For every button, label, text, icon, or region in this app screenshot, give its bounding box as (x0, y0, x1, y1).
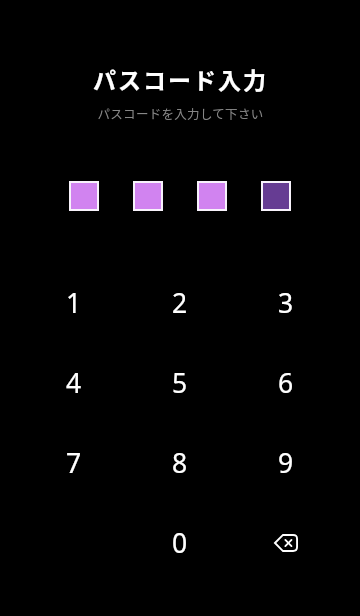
staticText: 5 (172, 365, 188, 401)
button[interactable]: Delete (233, 503, 339, 583)
staticText: 7 (66, 445, 82, 481)
button[interactable]: 2 (127, 263, 233, 343)
staticText: 8 (172, 445, 188, 481)
button[interactable]: 5 (127, 343, 233, 423)
staticText: パスコードを入力して下さい (97, 104, 264, 122)
staticText: 1 (66, 285, 82, 321)
button[interactable]: 6 (233, 343, 339, 423)
staticText: 3 (278, 285, 294, 321)
button[interactable]: 8 (127, 423, 233, 503)
staticText: 4 (66, 365, 82, 401)
button[interactable]: 1 (21, 263, 127, 343)
staticText: 9 (278, 445, 294, 481)
button[interactable]: 4 (21, 343, 127, 423)
staticText: 6 (278, 365, 294, 401)
button[interactable]: 3 (233, 263, 339, 343)
staticText: パスコード入力 (92, 62, 267, 95)
staticText: 2 (172, 285, 188, 321)
button[interactable]: 7 (21, 423, 127, 503)
button[interactable]: 0 (127, 503, 233, 583)
staticText: 0 (172, 525, 188, 561)
button[interactable]: 9 (233, 423, 339, 503)
